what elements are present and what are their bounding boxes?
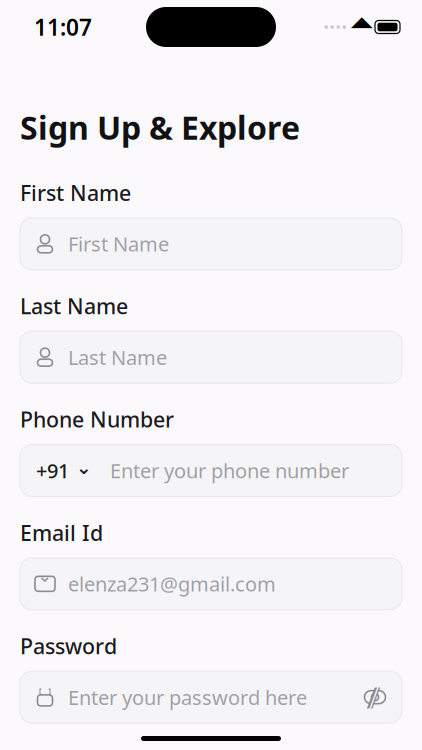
button[interactable]: Last Name [20,331,402,383]
staticText: Password [20,632,117,660]
staticText: Enter your phone number [110,457,349,484]
staticText: First Name [20,178,131,207]
staticText: / [368,678,379,717]
button[interactable]: Show password [362,684,388,710]
staticText: / [369,678,380,717]
staticText: elenza231@gmail.com [68,570,276,597]
staticText: +91 [36,457,69,484]
button[interactable]: ⌄ [20,558,402,610]
staticText: Enter your password here [68,684,307,710]
staticText: Last Name [68,344,167,370]
staticText: / [366,678,377,717]
staticText: Last Name [20,292,128,320]
staticText: Sign Up & Explore [20,106,300,148]
staticText: 11:07 [34,12,92,42]
staticText: Email Id [20,518,103,547]
button[interactable]: Enter your password here [20,671,402,723]
staticText: Phone Number [20,405,174,433]
button[interactable]: +91 [20,444,402,496]
button[interactable]: First Name [20,218,402,270]
staticText: First Name [68,230,169,257]
staticText: ⌄ [76,457,92,478]
staticText: ⌄ [37,566,52,586]
staticText: ◥ [353,16,368,38]
